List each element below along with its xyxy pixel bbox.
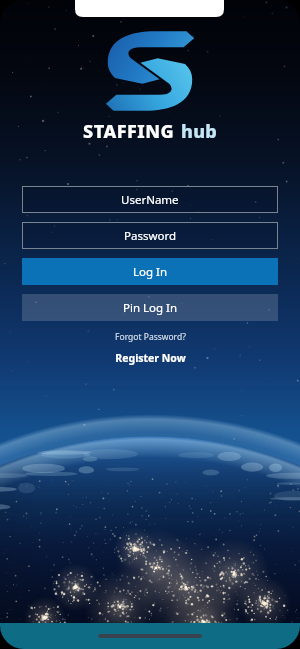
button[interactable]: UserName	[22, 186, 278, 213]
staticText: STAFFING	[83, 119, 175, 144]
staticText: UserName	[121, 192, 179, 208]
staticText: Register Now	[115, 351, 186, 365]
button[interactable]: Log In	[22, 258, 278, 285]
staticText: Forgot Password?	[115, 331, 186, 343]
button[interactable]: Forgot Password?	[0, 331, 300, 343]
button[interactable]: Register Now	[0, 351, 300, 365]
staticText: Log In	[133, 264, 168, 280]
button[interactable]: Pin Log In	[22, 294, 278, 321]
staticText: Password	[124, 228, 177, 244]
other: Home gesture bar	[98, 634, 202, 638]
staticText: hub	[181, 119, 218, 144]
button[interactable]: Password	[22, 222, 278, 249]
other: Staffing Hub logo	[102, 30, 198, 112]
staticText: Pin Log In	[123, 300, 178, 316]
